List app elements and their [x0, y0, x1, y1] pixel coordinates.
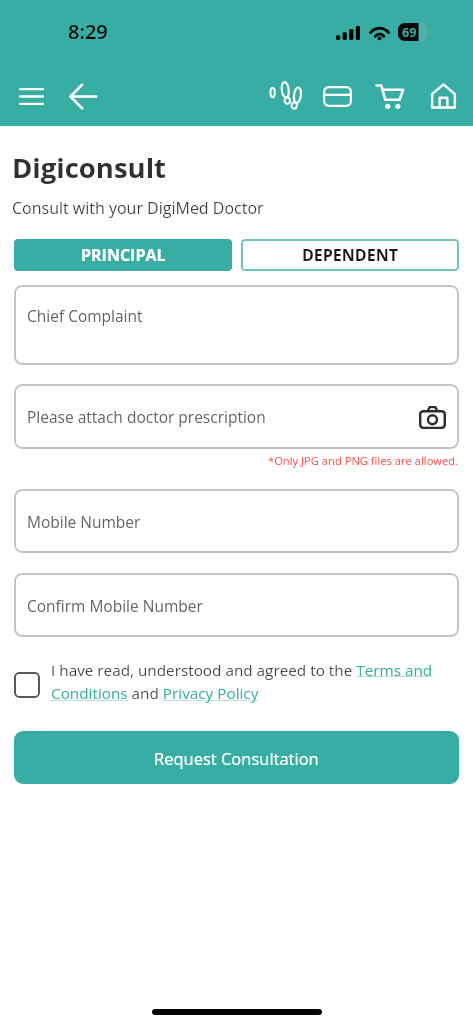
staticText: Consult with your DigiMed Doctor — [12, 197, 264, 219]
button[interactable]: Payments — [315, 74, 359, 118]
button[interactable]: Home — [421, 72, 465, 120]
staticText: DEPENDENT — [302, 244, 398, 266]
button[interactable]: Request Consultation — [14, 731, 459, 784]
button[interactable]: Steps — [264, 71, 310, 119]
staticText: PRINCIPAL — [81, 244, 166, 266]
staticText: Chief Complaint — [27, 305, 143, 326]
staticText: 69 — [402, 24, 417, 41]
staticText: *Only JPG and PNG files are allowed. — [268, 453, 459, 468]
button[interactable]: Cart — [368, 72, 412, 120]
button[interactable]: Take photo — [415, 400, 449, 434]
button[interactable]: DEPENDENT — [241, 239, 459, 271]
button[interactable]: PRINCIPAL — [14, 239, 232, 271]
button[interactable]: Confirm Mobile Number — [14, 573, 459, 637]
staticText: Digiconsult — [12, 149, 166, 186]
staticText: 8:29 — [68, 18, 108, 45]
button[interactable]: Please attach doctor prescription — [14, 384, 459, 449]
button[interactable]: Menu — [5, 74, 57, 118]
button[interactable]: Chief Complaint — [14, 285, 459, 365]
staticText: Please attach doctor prescription — [27, 406, 266, 427]
button[interactable]: Mobile Number — [14, 489, 459, 553]
staticText: Confirm Mobile Number — [27, 595, 203, 616]
staticText: I have read, understood and agreed to th… — [51, 660, 459, 704]
staticText: Mobile Number — [27, 511, 141, 532]
staticText: Request Consultation — [154, 747, 319, 769]
button[interactable]: I have read, understood and agreed to th… — [14, 660, 459, 704]
button[interactable]: Back — [61, 73, 105, 119]
